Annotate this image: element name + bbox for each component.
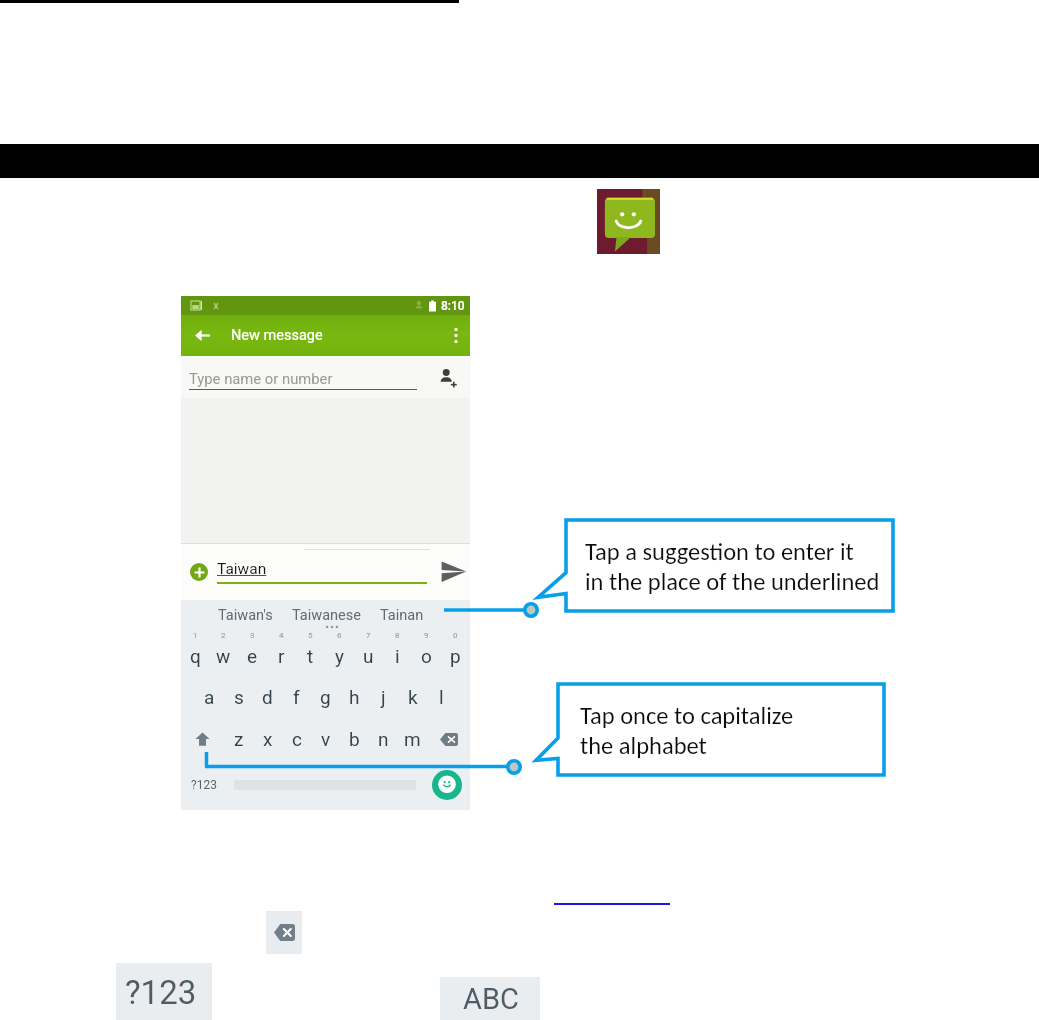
staticText: j <box>381 686 386 708</box>
staticText: Type name or number <box>189 370 333 387</box>
button[interactable]: z <box>224 718 253 760</box>
button[interactable]: Back <box>181 315 223 356</box>
staticText: p <box>450 645 461 667</box>
staticText: r <box>278 645 285 667</box>
button[interactable]: f <box>282 675 311 718</box>
button[interactable]: 1 <box>181 630 209 675</box>
staticText: f <box>293 686 300 708</box>
staticText: in the place of the underlined <box>585 567 880 597</box>
staticText: b <box>349 728 360 750</box>
staticText: 0 <box>453 631 458 640</box>
staticText: c <box>292 728 302 750</box>
staticText: x <box>263 728 273 750</box>
staticText: d <box>262 686 273 708</box>
staticText: m <box>404 728 421 750</box>
button[interactable]: 3 <box>238 630 267 675</box>
button[interactable]: Backspace key <box>266 911 302 954</box>
button[interactable]: c <box>282 718 311 760</box>
button[interactable]: Tainan <box>380 607 424 624</box>
staticText: the alphabet <box>580 731 707 761</box>
staticText: e <box>247 645 258 667</box>
staticText: u <box>363 645 374 667</box>
button[interactable]: n <box>369 718 398 760</box>
button[interactable]: 7 <box>354 630 383 675</box>
button[interactable]: l <box>427 675 456 718</box>
staticText: 7 <box>366 631 371 640</box>
button[interactable]: ABC <box>440 977 540 1020</box>
button[interactable]: Emoji <box>424 760 470 810</box>
button[interactable]: ?123 <box>116 963 212 1020</box>
staticText: 5 <box>308 631 313 640</box>
button[interactable]: More options <box>442 315 470 356</box>
staticText: n <box>378 728 389 750</box>
button[interactable]: 0 <box>441 630 470 675</box>
button[interactable]: 5 <box>296 630 325 675</box>
button[interactable]: 8 <box>383 630 412 675</box>
staticText: Tainan <box>380 607 424 624</box>
button[interactable]: m <box>398 718 427 760</box>
button[interactable]: Add contact <box>425 356 470 398</box>
button[interactable]: Messaging app icon <box>597 189 660 254</box>
staticText: 4 <box>279 631 284 640</box>
staticText: z <box>234 728 244 750</box>
staticText: h <box>349 686 360 708</box>
staticText: o <box>421 645 432 667</box>
staticText: v <box>321 728 331 750</box>
staticText: Tap once to capitalize <box>580 701 794 731</box>
staticText: 8 <box>395 631 400 640</box>
staticText: 2 <box>221 631 226 640</box>
staticText: q <box>190 645 201 667</box>
staticText: 8:10 <box>441 299 465 313</box>
staticText: 1 <box>193 631 198 640</box>
staticText: g <box>320 686 331 708</box>
button[interactable]: 4 <box>267 630 296 675</box>
button[interactable]: b <box>340 718 369 760</box>
button[interactable]: Taiwan's <box>218 607 273 624</box>
button[interactable]: g <box>311 675 340 718</box>
staticText: 3 <box>250 631 255 640</box>
staticText: New message <box>231 327 323 344</box>
staticText: w <box>216 645 231 667</box>
staticText: ?123 <box>191 778 217 792</box>
button[interactable]: 6 <box>325 630 354 675</box>
button[interactable]: k <box>398 675 427 718</box>
button[interactable]: Shift <box>181 718 224 760</box>
button[interactable]: Send <box>437 555 470 588</box>
button[interactable] <box>226 760 424 810</box>
staticText: 9 <box>424 631 429 640</box>
staticText: s <box>234 686 244 708</box>
button[interactable]: Attach <box>190 563 208 581</box>
button[interactable]: Taiwanese <box>292 607 361 624</box>
button[interactable]: x <box>253 718 282 760</box>
button[interactable]: s <box>224 675 253 718</box>
staticText: Taiwan <box>217 560 267 578</box>
staticText: Tap a suggestion to enter it <box>585 537 854 567</box>
button[interactable]: a <box>195 675 224 718</box>
button[interactable]: ?123 <box>181 760 226 810</box>
staticText: k <box>408 686 418 708</box>
staticText: i <box>395 645 400 667</box>
button[interactable]: j <box>369 675 398 718</box>
button[interactable]: Backspace <box>427 718 470 760</box>
button[interactable]: h <box>340 675 369 718</box>
staticText: ABC <box>463 982 519 1016</box>
staticText: t <box>307 645 314 667</box>
staticText: 6 <box>337 631 342 640</box>
staticText: Taiwan's <box>218 607 273 624</box>
button[interactable]: 9 <box>412 630 441 675</box>
staticText: y <box>335 645 344 667</box>
staticText: l <box>439 686 444 708</box>
button[interactable]: d <box>253 675 282 718</box>
staticText: a <box>204 686 215 708</box>
staticText: Taiwanese <box>292 607 361 624</box>
button[interactable]: v <box>311 718 340 760</box>
button[interactable]: 2 <box>209 630 238 675</box>
staticText: ?123 <box>125 973 197 1012</box>
